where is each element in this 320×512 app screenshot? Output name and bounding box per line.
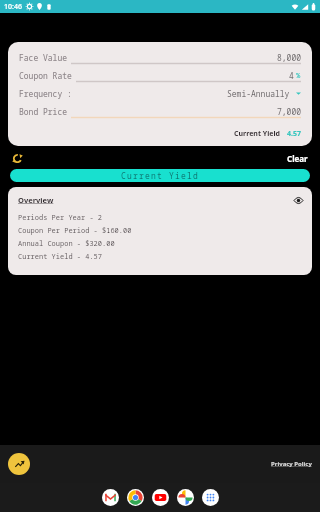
button[interactable]: Chart <box>8 453 30 475</box>
staticText: Current Yield <box>234 129 280 139</box>
button[interactable]: YouTube <box>152 489 169 506</box>
button[interactable]: Photos <box>177 489 194 506</box>
button[interactable]: Current Yield <box>10 169 310 182</box>
staticText: Privacy Policy <box>271 460 312 468</box>
staticText: Annual Coupon - $320.00 <box>18 239 115 249</box>
button[interactable]: Frequency : <box>19 86 301 101</box>
staticText: Clear <box>287 153 308 164</box>
staticText: 4.57 <box>287 129 301 139</box>
staticText: Periods Per Year - 2 <box>18 213 102 223</box>
staticText: Bond Price <box>19 106 67 117</box>
button[interactable]: Coupon Rate <box>19 68 301 83</box>
staticText: Coupon Per Period - $160.00 <box>18 226 132 236</box>
staticText: Frequency : <box>19 88 72 99</box>
staticText: 7,000 <box>277 106 301 117</box>
staticText: Current Yield <box>121 170 199 181</box>
button[interactable]: Privacy Policy <box>269 458 314 470</box>
staticText: 4 <box>289 70 294 81</box>
staticText: Coupon Rate <box>19 70 72 81</box>
button[interactable]: Clear <box>285 151 310 166</box>
button[interactable]: Bond Price <box>19 104 301 119</box>
button[interactable]: Face Value <box>19 50 301 65</box>
staticText: 8,000 <box>277 52 301 63</box>
staticText: Face Value <box>19 52 67 63</box>
button[interactable]: Chrome <box>127 489 144 506</box>
button[interactable]: Toggle visibility <box>292 194 304 206</box>
staticText: % <box>296 71 301 81</box>
button[interactable]: Gmail <box>102 489 119 506</box>
staticText: 10:46 <box>4 2 22 12</box>
staticText: Overview <box>18 195 54 205</box>
button[interactable]: Refresh <box>10 151 24 165</box>
button[interactable]: Apps <box>202 489 219 506</box>
staticText: Semi-Annually <box>227 88 290 99</box>
staticText: Current Yield - 4.57 <box>18 252 102 262</box>
